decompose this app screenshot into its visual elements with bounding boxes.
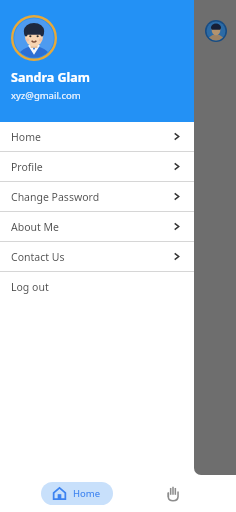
staticText: xyz@gmail.com — [11, 89, 81, 102]
button[interactable]: Contact Us — [0, 242, 194, 271]
button[interactable]: Log out — [0, 272, 194, 301]
button[interactable]: Pointer — [164, 484, 182, 502]
staticText: Sandra Glam — [11, 69, 90, 86]
staticText: Home — [73, 487, 101, 500]
staticText: About Me — [11, 220, 59, 234]
button[interactable]: Home — [41, 482, 113, 505]
staticText: Home — [11, 130, 41, 144]
staticText: Profile — [11, 160, 43, 174]
button[interactable]: Home — [0, 122, 194, 151]
staticText: Contact Us — [11, 250, 65, 264]
button[interactable]: About Me — [0, 212, 194, 241]
button[interactable]: Close drawer — [194, 0, 236, 475]
staticText: Change Password — [11, 190, 100, 204]
button[interactable]: Profile — [0, 152, 194, 181]
button[interactable]: Change Password — [0, 182, 194, 211]
staticText: Log out — [11, 280, 49, 294]
